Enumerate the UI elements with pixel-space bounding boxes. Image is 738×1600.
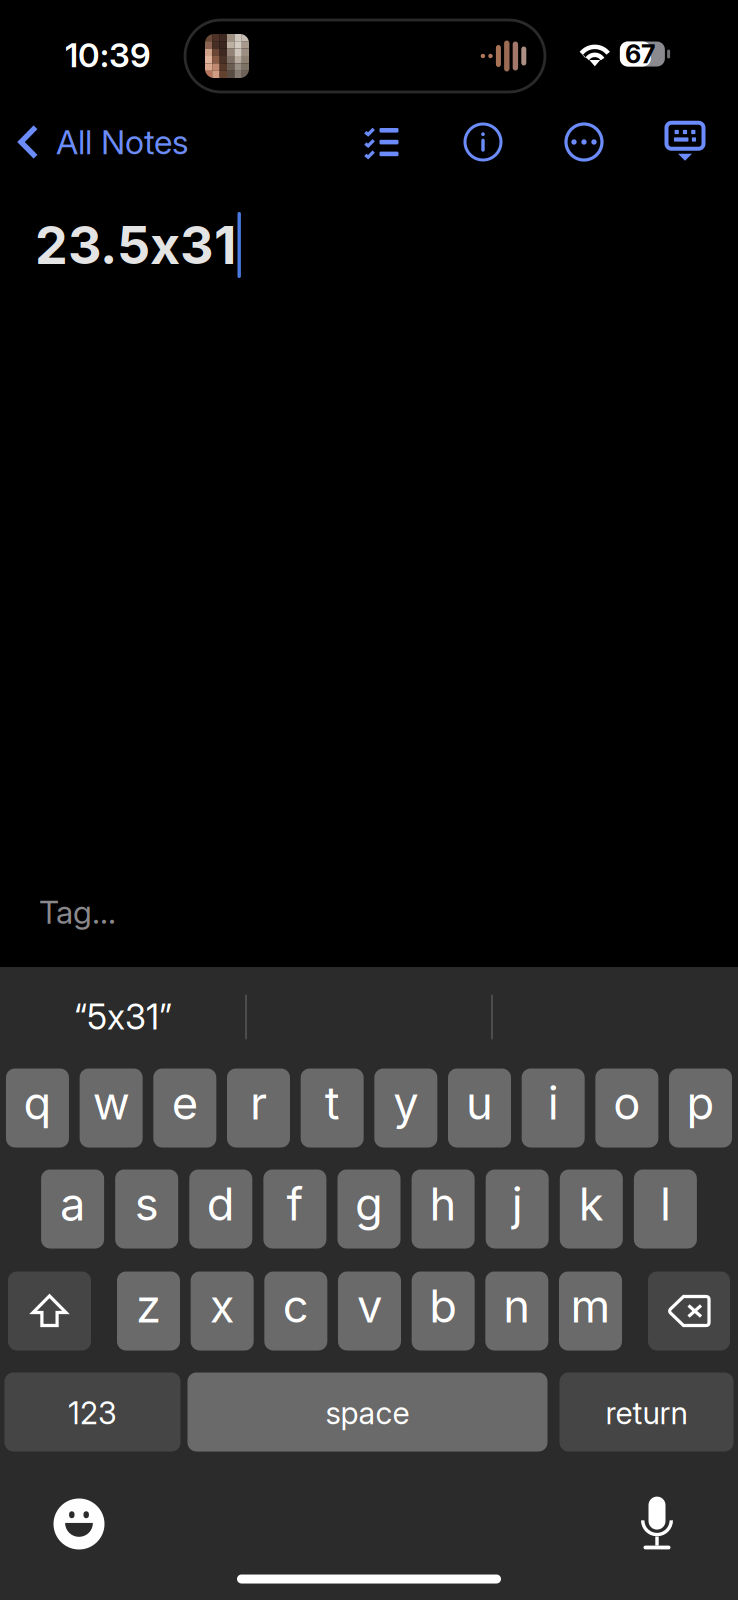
staticText: j <box>512 1177 523 1231</box>
button[interactable]: p <box>669 1068 732 1147</box>
button[interactable]: Dictate <box>623 1489 691 1557</box>
button[interactable]: Delete <box>648 1271 730 1350</box>
button[interactable]: “5x31” <box>0 967 246 1067</box>
staticText: e <box>172 1076 198 1130</box>
button[interactable]: u <box>448 1068 511 1147</box>
button[interactable]: g <box>337 1169 400 1248</box>
staticText: s <box>135 1177 159 1231</box>
button[interactable]: Emoji <box>45 1490 113 1558</box>
button[interactable]: e <box>153 1068 216 1147</box>
button[interactable]: l <box>634 1169 697 1248</box>
button[interactable]: o <box>595 1068 658 1147</box>
staticText: a <box>60 1177 85 1231</box>
button[interactable]: j <box>486 1169 549 1248</box>
button[interactable]: a <box>41 1169 104 1248</box>
button[interactable]: Checklist <box>353 114 409 170</box>
button[interactable]: h <box>412 1169 475 1248</box>
staticText: 10:39 <box>65 35 151 75</box>
button[interactable]: r <box>227 1068 290 1147</box>
staticText: 67 <box>625 39 656 69</box>
button[interactable]: n <box>485 1271 548 1350</box>
staticText: d <box>207 1177 235 1231</box>
staticText: p <box>686 1076 714 1130</box>
staticText: “5x31” <box>74 996 172 1038</box>
button[interactable]: Shift <box>8 1271 91 1350</box>
staticText: o <box>613 1076 640 1130</box>
staticText: l <box>660 1177 671 1231</box>
staticText: i <box>548 1076 559 1130</box>
button[interactable]: i <box>522 1068 585 1147</box>
button[interactable]: q <box>6 1068 69 1147</box>
staticText: t <box>325 1076 340 1130</box>
staticText: f <box>286 1177 303 1231</box>
button[interactable]: k <box>560 1169 623 1248</box>
button[interactable]: m <box>559 1271 622 1350</box>
staticText: g <box>355 1177 383 1231</box>
staticText: All Notes <box>56 122 189 162</box>
staticText: q <box>23 1076 51 1130</box>
staticText: r <box>250 1076 267 1130</box>
button[interactable]: b <box>412 1271 475 1350</box>
button[interactable]: f <box>263 1169 326 1248</box>
staticText: n <box>503 1279 530 1333</box>
button[interactable]: All Notes <box>18 114 218 170</box>
staticText: 123 <box>68 1394 117 1431</box>
staticText: v <box>357 1279 382 1333</box>
button[interactable]: 123 <box>4 1372 180 1451</box>
staticText: y <box>393 1076 418 1130</box>
staticText: return <box>605 1394 687 1431</box>
button[interactable]: space <box>187 1372 547 1451</box>
staticText: x <box>210 1279 235 1333</box>
button[interactable]: Hide Keyboard <box>657 114 713 170</box>
button[interactable]: return <box>559 1372 733 1451</box>
button[interactable]: t <box>301 1068 364 1147</box>
button[interactable]: y <box>374 1068 437 1147</box>
button[interactable]: More <box>556 114 612 170</box>
staticText: u <box>466 1076 493 1130</box>
staticText: b <box>429 1279 457 1333</box>
button[interactable]: c <box>264 1271 327 1350</box>
staticText: m <box>570 1279 610 1333</box>
button[interactable]: Info <box>455 114 511 170</box>
button[interactable]: x <box>191 1271 254 1350</box>
button[interactable]: v <box>338 1271 401 1350</box>
staticText: 23.5x31 <box>35 213 236 276</box>
staticText: h <box>430 1177 457 1231</box>
staticText: w <box>93 1076 130 1130</box>
button[interactable]: s <box>115 1169 178 1248</box>
button[interactable]: w <box>80 1068 143 1147</box>
button[interactable]: d <box>189 1169 252 1248</box>
staticText: space <box>325 1394 409 1431</box>
button[interactable]: z <box>117 1271 180 1350</box>
staticText: c <box>283 1279 309 1333</box>
staticText: Tag... <box>39 893 116 931</box>
staticText: z <box>136 1279 161 1333</box>
staticText: k <box>579 1177 604 1231</box>
